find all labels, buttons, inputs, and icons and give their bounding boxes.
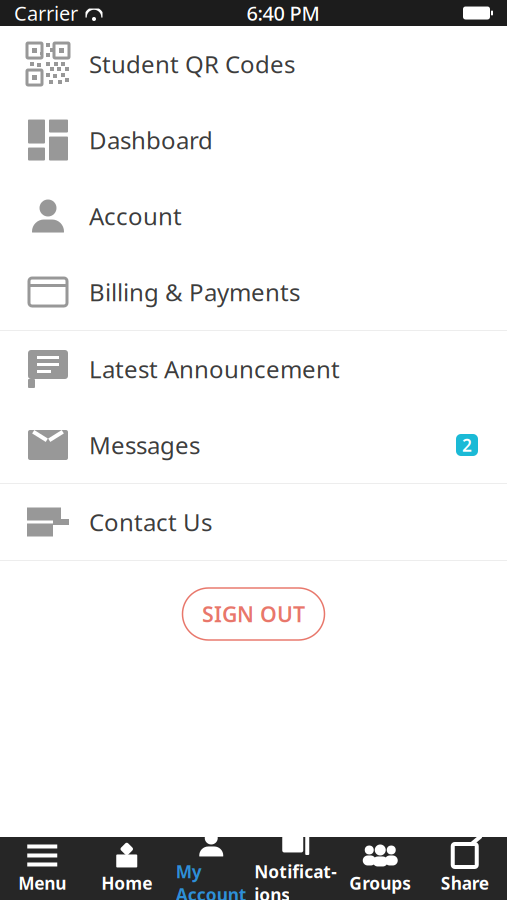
staticText: Home	[101, 871, 152, 894]
staticText: Billing & Payments	[89, 276, 300, 308]
staticText: Carrier	[14, 0, 78, 26]
staticText: Groups	[349, 871, 411, 894]
button[interactable]: Billing & Payments	[0, 254, 507, 330]
button[interactable]: My Account	[169, 837, 253, 900]
button[interactable]: Groups	[338, 837, 422, 900]
staticText: Notifications	[254, 860, 337, 900]
button[interactable]: Dashboard	[0, 102, 507, 178]
staticText: My Account	[176, 860, 247, 900]
button[interactable]: Share	[422, 837, 507, 900]
button[interactable]: Messages	[0, 407, 507, 483]
staticText: 6:40 PM	[246, 0, 319, 26]
button[interactable]: Student QR Codes	[0, 26, 507, 102]
button[interactable]: Latest Announcement	[0, 331, 507, 407]
staticText: Account	[89, 200, 182, 232]
staticText: Dashboard	[89, 124, 213, 156]
staticText: 2	[462, 433, 472, 456]
button[interactable]: Account	[0, 178, 507, 254]
staticText: Share	[441, 871, 489, 894]
button[interactable]: Menu	[0, 837, 84, 900]
button[interactable]: Home	[84, 837, 169, 900]
button[interactable]: SIGN OUT	[182, 588, 324, 640]
staticText: Latest Announcement	[89, 353, 340, 385]
staticText: SIGN OUT	[202, 600, 305, 628]
staticText: Student QR Codes	[89, 48, 295, 80]
staticText: Contact Us	[89, 506, 212, 538]
staticText: Messages	[89, 429, 200, 461]
button[interactable]: Contact Us	[0, 484, 507, 560]
staticText: Menu	[18, 871, 66, 894]
button[interactable]: Notifications	[253, 837, 338, 900]
